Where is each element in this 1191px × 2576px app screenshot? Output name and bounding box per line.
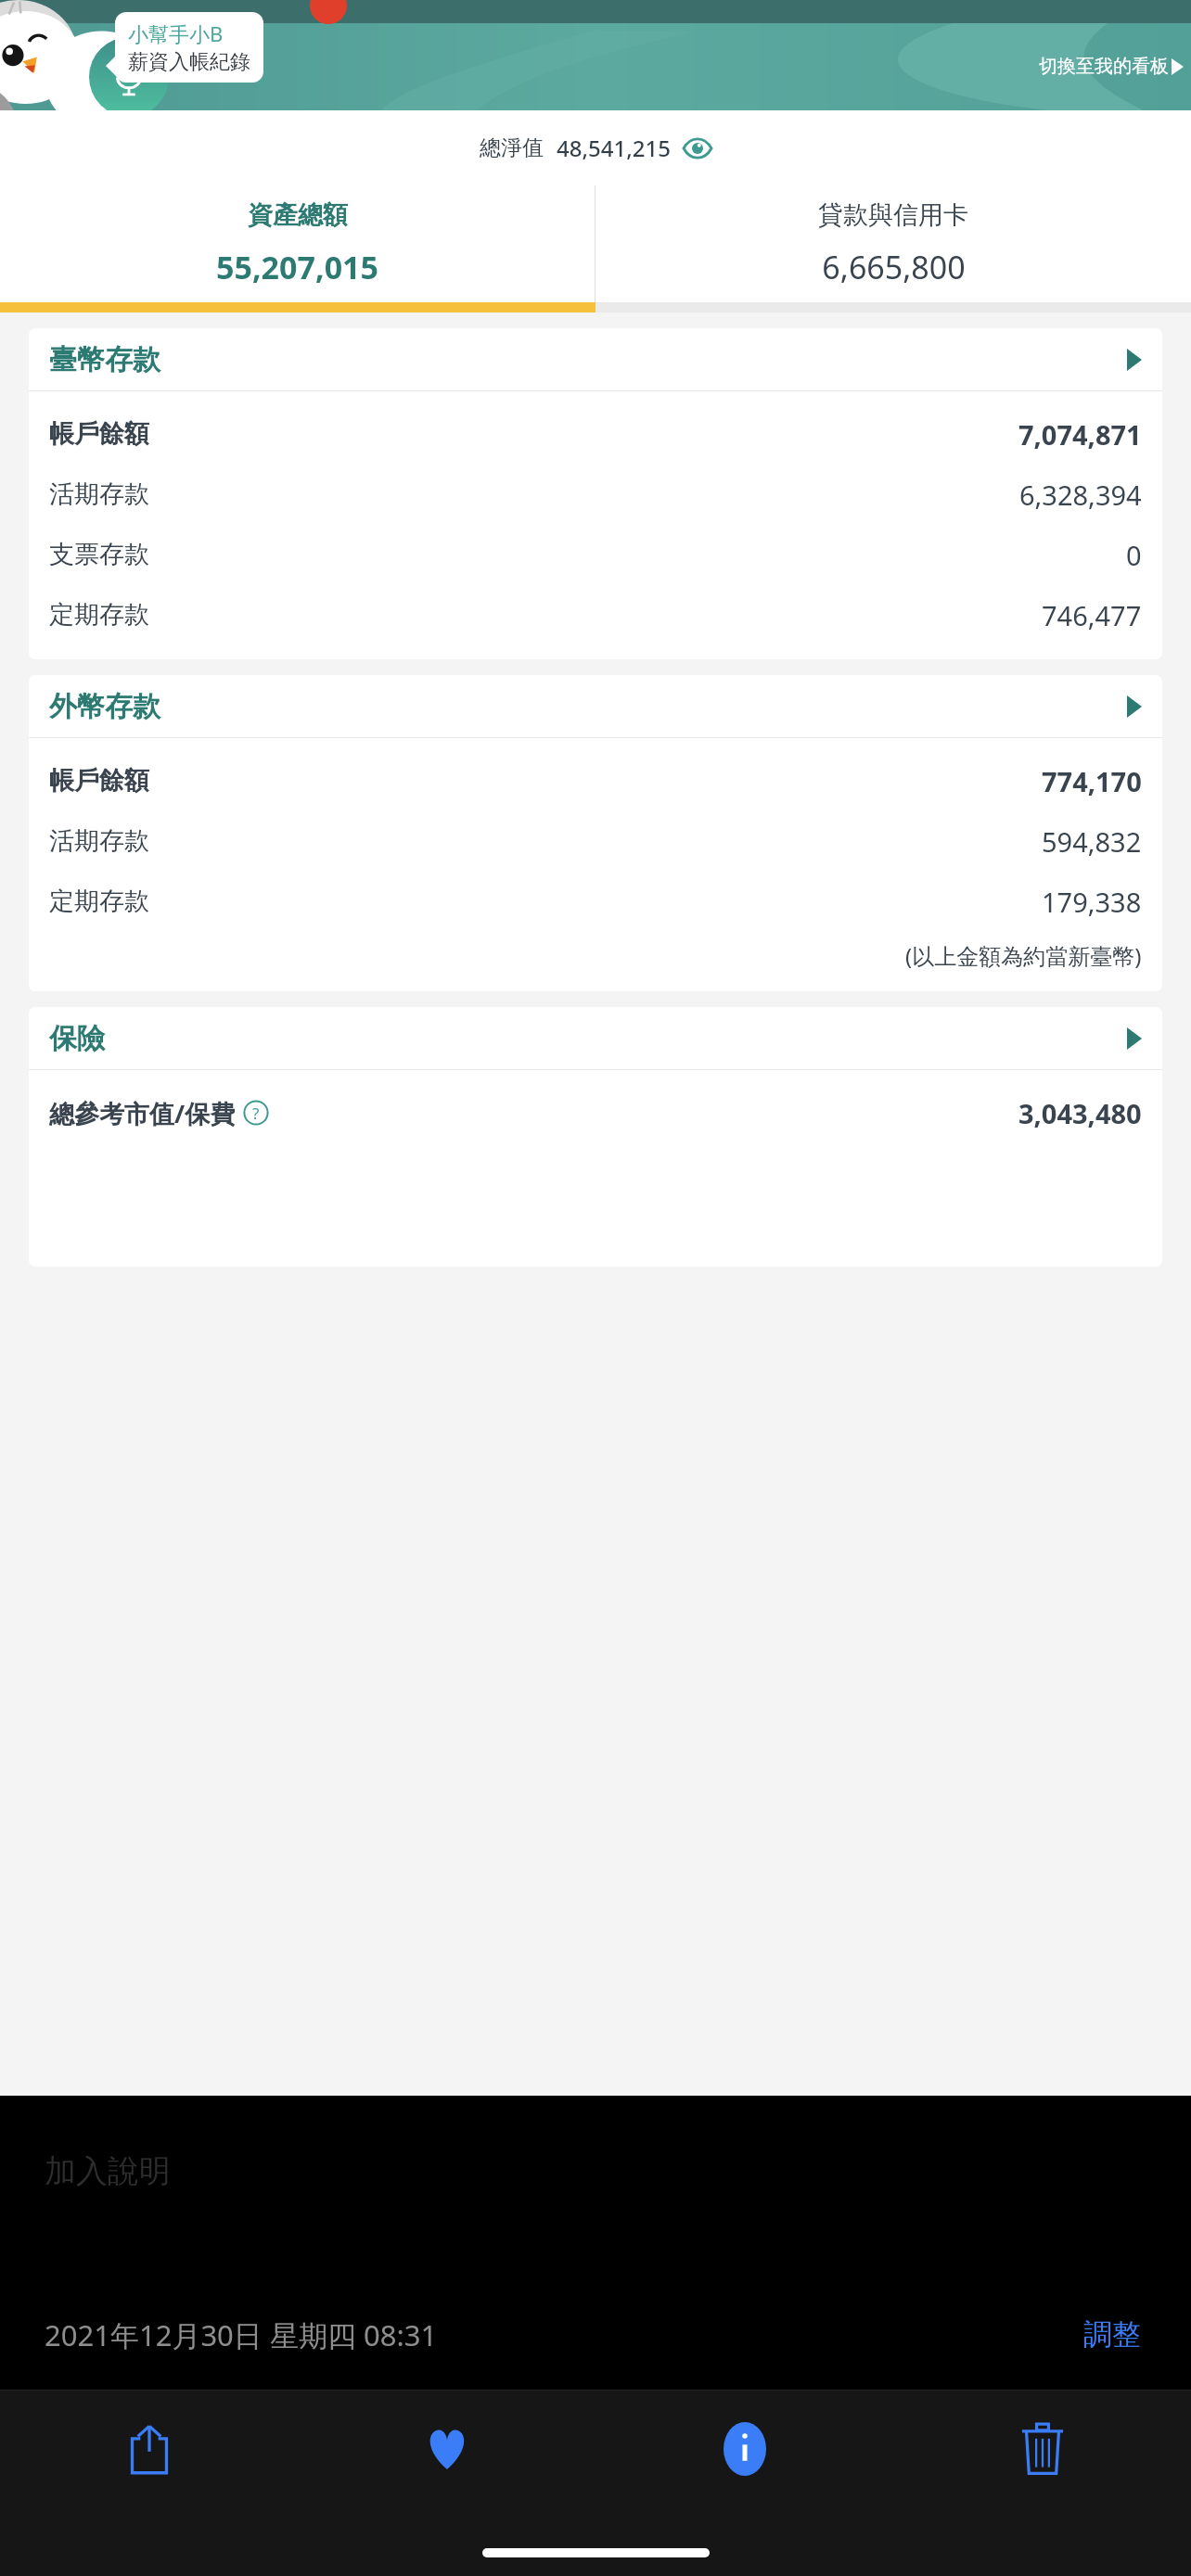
staticText: 6,328,394 [1019,477,1142,513]
button[interactable]: 總淨值 [470,127,721,169]
staticText: (以上金額為約當新臺幣) [905,940,1142,971]
staticText: 6,665,800 [822,246,966,288]
staticText: 594,832 [1042,823,1142,860]
staticText: 7,074,871 [1018,416,1142,453]
staticText: 總淨值 [480,134,544,161]
staticText: 活期存款 [49,478,149,510]
staticText: 切換至我的看板 [1039,55,1169,78]
staticText: 3,043,480 [1018,1095,1142,1131]
staticText: 746,477 [1042,597,1142,633]
staticText: 定期存款 [49,599,149,631]
button[interactable]: 資產總額 [0,185,595,302]
staticText: 外幣存款 [49,689,160,724]
button[interactable]: 說明 [243,1100,269,1126]
button[interactable]: 貸款與信用卡 [595,185,1191,302]
button[interactable]: 臺幣存款 [29,328,1162,390]
staticText: 臺幣存款 [49,342,160,377]
button[interactable]: 語音助理 [89,37,169,117]
staticText: 調整 [1083,2316,1141,2353]
staticText: 小幫手小B [128,19,224,47]
button[interactable]: 保險 [29,1007,1162,1069]
staticText: 活期存款 [49,825,149,857]
staticText: 薪資入帳紀錄 [128,49,250,75]
staticText: 貸款與信用卡 [818,199,968,231]
button[interactable]: 調整 [1078,2311,1146,2358]
staticText: 0 [1126,537,1142,573]
staticText: 定期存款 [49,886,149,917]
staticText: ? [252,1103,260,1124]
staticText: 774,170 [1042,763,1142,799]
button[interactable]: 外幣存款 [29,675,1162,737]
staticText: 資產總額 [248,199,348,231]
staticText: 加入說明 [45,2151,171,2191]
staticText: 2021年12月30日 星期四 08:31 [45,2315,438,2354]
staticText: 55,207,015 [216,246,378,288]
button[interactable]: 我的最愛 [405,2407,489,2491]
staticText: 保險 [49,1021,105,1056]
staticText: 48,541,215 [557,133,671,163]
button[interactable]: 分享 [108,2407,191,2491]
staticText: 帳戶餘額 [49,418,149,450]
staticText: 支票存款 [49,539,149,570]
staticText: 總參考市值/保費 [49,1096,236,1130]
button[interactable]: 資訊 [703,2407,787,2491]
button[interactable]: 切換至我的看板 [1031,49,1191,83]
button[interactable]: 刪除 [1001,2407,1084,2491]
staticText: 帳戶餘額 [49,765,149,797]
button[interactable]: 小幫手小B [115,12,263,83]
staticText: 179,338 [1042,884,1142,920]
